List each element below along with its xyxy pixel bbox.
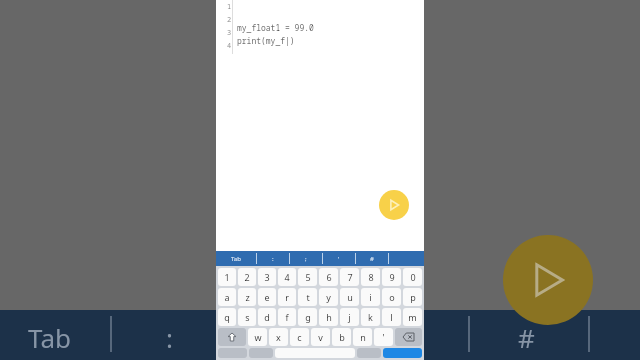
button[interactable]: ' — [323, 251, 355, 266]
staticText: b — [339, 331, 345, 343]
button[interactable]: 3 — [258, 268, 276, 286]
button[interactable] — [249, 348, 273, 358]
staticText: p — [410, 291, 416, 303]
button[interactable]: y — [319, 288, 338, 306]
staticText: : — [272, 255, 274, 263]
button[interactable]: o — [382, 288, 401, 306]
staticText: 5 — [305, 271, 311, 283]
staticText: l — [390, 311, 393, 323]
staticText: Tab — [231, 255, 241, 263]
staticText: v — [318, 331, 323, 343]
staticText: 9 — [389, 271, 395, 283]
staticText: 1 — [224, 271, 230, 283]
staticText: # — [518, 320, 535, 355]
button[interactable]: r — [278, 288, 296, 306]
staticText: 7 — [347, 271, 353, 283]
staticText: ' — [338, 255, 340, 263]
button[interactable]: s — [238, 308, 256, 326]
staticText: 8 — [368, 271, 374, 283]
staticText: y — [326, 291, 331, 303]
button[interactable]: Run — [503, 235, 593, 325]
button[interactable]: Run — [379, 190, 409, 220]
staticText: c — [297, 331, 302, 343]
button[interactable]: q — [218, 308, 236, 326]
staticText: e — [264, 291, 270, 303]
button[interactable]: 1 — [218, 268, 236, 286]
staticText: # — [370, 255, 374, 263]
staticText: h — [326, 311, 332, 323]
staticText: 3 — [227, 28, 232, 38]
staticText: k — [368, 311, 373, 323]
staticText: i — [369, 291, 372, 303]
staticText: q — [224, 311, 230, 323]
staticText: s — [245, 311, 250, 323]
button[interactable]: c — [290, 328, 309, 346]
button[interactable] — [357, 348, 381, 358]
button[interactable]: m — [403, 308, 422, 326]
staticText: t — [306, 291, 310, 303]
button[interactable]: z — [238, 288, 256, 306]
staticText: u — [347, 291, 353, 303]
staticText: 6 — [326, 271, 332, 283]
staticText: 2 — [244, 271, 250, 283]
staticText: x — [276, 331, 281, 343]
staticText: print(my_f|) — [237, 35, 295, 46]
staticText: 3 — [264, 271, 270, 283]
staticText: f — [285, 311, 289, 323]
button[interactable]: # — [356, 251, 388, 266]
staticText: n — [360, 331, 366, 343]
button[interactable]: e — [258, 288, 276, 306]
staticText: 0 — [410, 271, 416, 283]
staticText: r — [285, 291, 289, 303]
button[interactable]: p — [403, 288, 422, 306]
button[interactable]: : — [257, 251, 289, 266]
button[interactable]: t — [298, 288, 317, 306]
button[interactable]: g — [298, 308, 317, 326]
button[interactable]: h — [319, 308, 338, 326]
staticText: d — [264, 311, 270, 323]
staticText: my_float1 = 99.0 — [237, 22, 314, 33]
button[interactable]: 0 — [403, 268, 422, 286]
button[interactable]: Backspace — [395, 328, 422, 346]
button[interactable]: ' — [374, 328, 393, 346]
button[interactable]: Shift — [218, 328, 246, 346]
staticText: j — [348, 311, 351, 323]
button[interactable]: j — [340, 308, 359, 326]
button[interactable]: 2 — [238, 268, 256, 286]
staticText: g — [305, 311, 311, 323]
button[interactable]: 4 — [278, 268, 296, 286]
staticText: m — [408, 311, 417, 323]
button[interactable]: 8 — [361, 268, 380, 286]
button[interactable]: i — [361, 288, 380, 306]
button[interactable]: w — [248, 328, 267, 346]
button[interactable]: u — [340, 288, 359, 306]
staticText: a — [224, 291, 230, 303]
button[interactable]: ; — [290, 251, 322, 266]
button[interactable]: d — [258, 308, 276, 326]
button[interactable]: a — [218, 288, 236, 306]
button[interactable]: Tab — [216, 251, 256, 266]
button[interactable] — [383, 348, 422, 358]
staticText: 4 — [284, 271, 290, 283]
button[interactable]: 9 — [382, 268, 401, 286]
staticText: ' — [382, 331, 385, 343]
button[interactable]: n — [353, 328, 372, 346]
staticText: Tab — [28, 320, 71, 355]
button[interactable]: v — [311, 328, 330, 346]
button[interactable]: x — [269, 328, 288, 346]
button[interactable]: l — [382, 308, 401, 326]
button[interactable]: f — [278, 308, 296, 326]
button[interactable] — [218, 348, 247, 358]
button[interactable]: 5 — [298, 268, 317, 286]
staticText: z — [245, 291, 250, 303]
button[interactable]: b — [332, 328, 351, 346]
staticText: 4 — [227, 41, 232, 51]
staticText: o — [389, 291, 395, 303]
button[interactable]: 7 — [340, 268, 359, 286]
button[interactable]: k — [361, 308, 380, 326]
staticText: ; — [305, 255, 307, 263]
button[interactable]: 6 — [319, 268, 338, 286]
staticText: 2 — [227, 15, 232, 25]
staticText: w — [254, 331, 262, 343]
